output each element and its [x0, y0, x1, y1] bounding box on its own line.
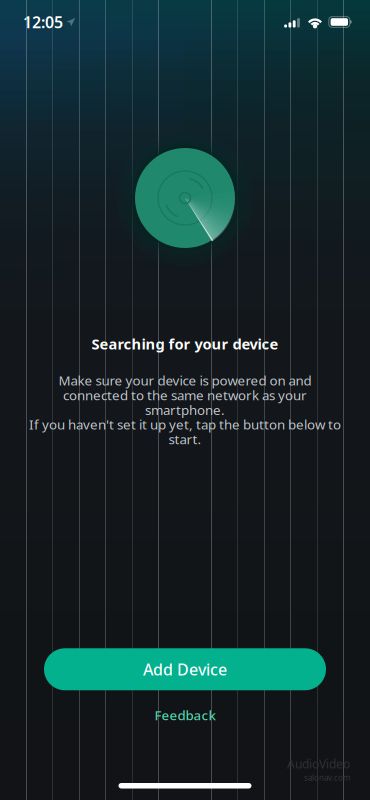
staticText: AudioVideo	[287, 756, 350, 772]
staticText: Make sure your device is powered on and	[58, 371, 311, 389]
staticText: smartphone.	[145, 401, 225, 419]
staticText: Add Device	[143, 659, 227, 680]
staticText: salonav.com	[304, 772, 350, 783]
button[interactable]: Feedback	[140, 702, 229, 728]
staticText: Feedback	[154, 706, 215, 724]
staticText: Searching for your device	[91, 334, 278, 353]
staticText: 12:05	[23, 11, 63, 33]
button[interactable]: Add Device	[44, 648, 326, 690]
staticText: connected to the same network as your	[63, 386, 307, 404]
staticText: If you haven't set it up yet, tap the bu…	[29, 416, 341, 433]
staticText: start.	[168, 430, 201, 448]
